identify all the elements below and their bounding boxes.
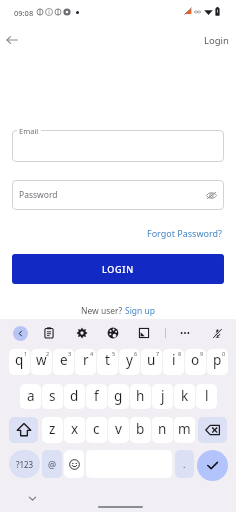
button[interactable]: Enter (197, 450, 228, 481)
button[interactable]: Forgot Password? (145, 226, 224, 240)
staticText: v (115, 420, 122, 438)
staticText: 6 (134, 350, 138, 357)
button[interactable]: z (42, 417, 63, 443)
staticText: 7 (156, 350, 160, 357)
staticText: 5 (112, 350, 116, 357)
staticText: 3 (68, 350, 72, 357)
staticText: Password (19, 189, 58, 201)
staticText: p (213, 351, 222, 369)
button[interactable]: e (53, 349, 74, 375)
staticText: g (114, 387, 123, 405)
button[interactable]: s (42, 384, 63, 409)
staticText: @ (48, 458, 57, 470)
staticText: w (36, 351, 47, 369)
staticText: 9 (200, 350, 204, 357)
staticText: 8 (178, 350, 182, 357)
button[interactable]: r (75, 349, 96, 375)
button[interactable]: c (86, 417, 107, 443)
button[interactable]: Shift (9, 417, 38, 443)
button[interactable]: g (108, 384, 129, 409)
button[interactable]: . (175, 450, 194, 478)
button[interactable]: Sign up (125, 305, 156, 317)
button[interactable]: d (64, 384, 85, 409)
button[interactable]: l (196, 384, 217, 409)
staticText: o (191, 351, 200, 369)
button[interactable]: Back (0, 28, 24, 52)
staticText: 2 (46, 350, 50, 357)
staticText: r (83, 351, 89, 369)
button[interactable]: Themes (105, 325, 121, 341)
button[interactable]: t (97, 349, 118, 375)
button[interactable]: Stickers (136, 325, 152, 341)
button[interactable]: m (174, 417, 195, 443)
button[interactable]: n (152, 417, 173, 443)
staticText: d (70, 387, 79, 405)
button[interactable]: i (163, 349, 184, 375)
staticText: t (105, 351, 110, 369)
staticText: c (93, 420, 100, 438)
staticText: b (136, 420, 145, 438)
button[interactable] (12, 130, 224, 162)
staticText: 4 (90, 350, 94, 357)
staticText: q (15, 351, 24, 369)
staticText: u (147, 351, 156, 369)
button[interactable]: More options (177, 325, 193, 341)
button[interactable]: Settings (74, 325, 90, 341)
button[interactable]: Backspace (198, 417, 227, 443)
staticText: e (60, 351, 68, 369)
button[interactable]: v (108, 417, 129, 443)
button[interactable]: Emoji (64, 450, 84, 478)
button[interactable]: o (185, 349, 206, 375)
staticText: Email (19, 126, 39, 136)
button[interactable]: x (64, 417, 85, 443)
button[interactable]: @ (42, 450, 62, 478)
staticText: n (158, 420, 167, 438)
staticText: x (71, 420, 79, 438)
staticText: i (172, 351, 176, 369)
staticText: . (183, 458, 186, 470)
button[interactable]: u (141, 349, 162, 375)
staticText: New user? (81, 305, 125, 317)
staticText: f (94, 387, 99, 405)
button[interactable]: LOGIN (12, 254, 224, 284)
button[interactable]: Clipboard (41, 325, 57, 341)
button[interactable]: Password (12, 180, 224, 210)
button[interactable]: Previous (13, 326, 28, 341)
staticText: 1 (24, 350, 28, 357)
staticText: z (49, 420, 56, 438)
staticText: y (126, 351, 133, 369)
staticText: k (181, 387, 189, 405)
button[interactable]: h (130, 384, 151, 409)
staticText: m (178, 420, 191, 438)
staticText: j (161, 387, 165, 405)
button[interactable]: Hide keyboard (24, 490, 40, 506)
button[interactable]: w (31, 349, 52, 375)
staticText: s (49, 387, 56, 405)
button[interactable]: f (86, 384, 107, 409)
staticText: Sign up (125, 305, 156, 317)
staticText: 09:08 (14, 8, 34, 18)
staticText: 0 (222, 350, 226, 357)
staticText: a (27, 387, 35, 405)
staticText: Forgot Password? (147, 227, 222, 239)
staticText: ?123 (16, 459, 34, 470)
staticText: l (205, 387, 209, 405)
button[interactable]: j (152, 384, 173, 409)
button[interactable]: q (9, 349, 30, 375)
staticText: Login (204, 34, 229, 47)
staticText: LOGIN (102, 263, 134, 275)
button[interactable]: p (207, 349, 228, 375)
button[interactable]: a (20, 384, 41, 409)
button[interactable]: y (119, 349, 140, 375)
button[interactable]: ?123 (9, 450, 40, 478)
button[interactable]: Voice input off (210, 326, 225, 341)
button[interactable]: k (174, 384, 195, 409)
staticText: h (136, 387, 145, 405)
button[interactable]: b (130, 417, 151, 443)
button[interactable]: Toggle password visibility (204, 188, 218, 202)
